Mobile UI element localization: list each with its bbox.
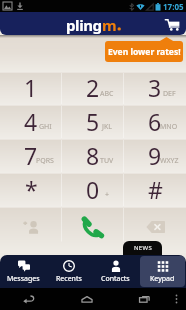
staticText: GHI [39,122,52,132]
staticText: NEWS [134,244,152,252]
staticText: TUV [100,156,114,166]
staticText: MNO [160,122,178,132]
staticText: 0 [86,174,100,205]
staticText: 8 [86,140,100,171]
staticText: 4 [24,106,38,137]
button[interactable]: Recents [133,288,155,310]
staticText: m [102,15,117,35]
staticText: PQRS [36,156,54,166]
staticText: 2 [86,72,100,103]
button[interactable]: Shopping cart [162,14,182,34]
staticText: # [148,174,163,205]
staticText: ABC [100,89,114,99]
staticText: Recents [56,274,82,284]
staticText: 9 [148,140,162,171]
staticText: + [105,190,110,200]
button[interactable]: Messages [1,256,45,287]
button[interactable]: * [0,173,62,207]
staticText: Even lower rates! [108,46,181,58]
staticText: Keypad [150,274,175,284]
button[interactable]: Menu [169,292,183,306]
button[interactable]: Keypad [140,256,185,287]
button[interactable]: Even lower rates! [105,41,183,62]
staticText: Messages [7,274,40,284]
button[interactable]: 4 [0,105,62,139]
button[interactable]: 7 [0,139,62,173]
staticText: WXYZ [160,156,179,166]
button[interactable]: NEWS [123,241,162,255]
button[interactable]: Home [76,288,98,310]
button[interactable]: Backspace [124,207,186,253]
button[interactable]: Call [62,207,124,253]
staticText: pling [66,15,102,35]
button[interactable]: 3 [124,72,186,105]
staticText: 6 [148,106,162,137]
button[interactable]: 0 [62,173,124,207]
button[interactable]: # [124,173,186,207]
staticText: * [25,174,38,205]
staticText: 7 [24,140,38,171]
staticText: 1 [24,72,38,103]
staticText: 5 [86,106,100,137]
button[interactable]: 1 [0,72,62,105]
button[interactable]: 2 [62,72,124,105]
button[interactable]: 6 [124,105,186,139]
staticText: Contacts [101,274,130,284]
button[interactable]: Add contact [0,207,62,253]
staticText: 3 [148,72,162,103]
staticText: JKL [102,122,112,132]
button[interactable]: 9 [124,139,186,173]
button[interactable]: Recents [47,256,91,287]
button[interactable]: Back [18,288,40,310]
button[interactable]: 8 [62,139,124,173]
button[interactable]: Contacts [93,256,138,287]
staticText: 17:05 [163,1,184,12]
button[interactable]: 5 [62,105,124,139]
staticText: DEF [163,89,176,99]
